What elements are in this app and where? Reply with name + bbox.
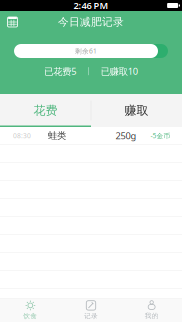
staticText: 已花费5 <box>44 65 76 77</box>
button[interactable]: 赚取 <box>91 94 182 127</box>
staticText: 已赚取10 <box>101 65 138 77</box>
staticText: 花费 <box>33 103 57 118</box>
staticText: 今日减肥记录 <box>58 15 124 28</box>
staticText: 08:30 <box>13 131 31 140</box>
staticText: 蛙类 <box>48 130 66 141</box>
staticText: 剩余61 <box>75 47 97 55</box>
staticText: 250g <box>115 130 136 142</box>
staticText: 记录 <box>84 312 98 320</box>
staticText: 2:46 PM <box>73 0 108 12</box>
button[interactable]: 记录 <box>68 299 114 322</box>
staticText: 赚取 <box>124 103 148 118</box>
button[interactable]: Calendar <box>0 11 25 33</box>
staticText: 我的 <box>145 312 159 320</box>
button[interactable]: 08:30 <box>0 127 182 144</box>
staticText: -5金币 <box>150 131 170 140</box>
button[interactable]: 花费 <box>0 94 91 127</box>
button[interactable]: 我的 <box>129 299 175 322</box>
button[interactable]: 饮食 <box>7 299 53 322</box>
staticText: 饮食 <box>23 312 37 320</box>
